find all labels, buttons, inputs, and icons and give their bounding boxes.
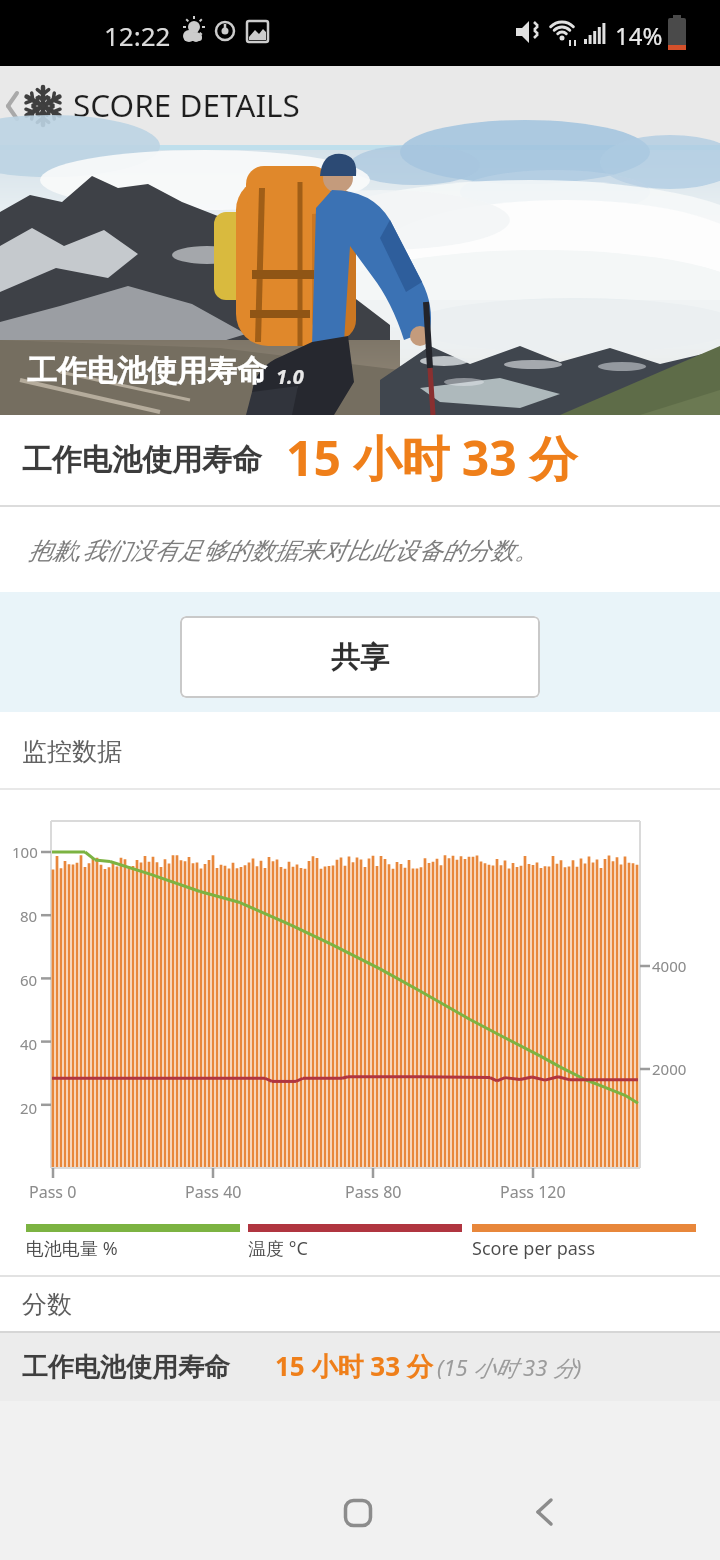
staticText: 15 小时 33 分 [286, 425, 578, 491]
staticText: 40 [20, 1034, 38, 1054]
staticText: 工作电池使用寿命 [27, 352, 267, 390]
staticText: Pass 40 [185, 1181, 242, 1203]
staticText: Pass 120 [500, 1181, 566, 1203]
staticText: 抱歉,我们没有足够的数据来对比此设备的分数。 [28, 533, 539, 566]
staticText: 温度 °C [248, 1236, 308, 1261]
staticText: 80 [20, 906, 38, 926]
staticText: 60 [20, 970, 38, 990]
staticText: 12:22 [104, 18, 171, 53]
staticText: Pass 0 [29, 1181, 77, 1203]
staticText: SCORE DETAILS [73, 83, 300, 126]
staticText: 14% [615, 19, 663, 52]
button[interactable] [330, 1485, 386, 1541]
staticText: 工作电池使用寿命 [22, 441, 262, 479]
staticText: Score per pass [472, 1236, 596, 1261]
staticText: 4000 [652, 956, 687, 976]
staticText: 工作电池使用寿命 [22, 1351, 230, 1384]
staticText: 监控数据 [22, 736, 122, 767]
button[interactable]: SCORE DETAILS [0, 66, 300, 145]
staticText: Pass 80 [345, 1181, 402, 1203]
staticText: 20 [20, 1098, 38, 1118]
staticText: 共享 [331, 639, 389, 676]
staticText: 分数 [22, 1289, 72, 1320]
staticText: 15 小时 33 分 [275, 1348, 433, 1384]
staticText: 电池电量 % [26, 1236, 118, 1261]
staticText: 100 [12, 842, 38, 862]
button[interactable] [520, 1487, 570, 1537]
button[interactable]: 工作电池使用寿命 [0, 1333, 720, 1401]
button[interactable]: 共享 [180, 616, 540, 698]
staticText: 2000 [652, 1059, 687, 1079]
staticText: 1.0 [276, 363, 304, 390]
staticText: (15 小时 33 分) [437, 1352, 582, 1382]
